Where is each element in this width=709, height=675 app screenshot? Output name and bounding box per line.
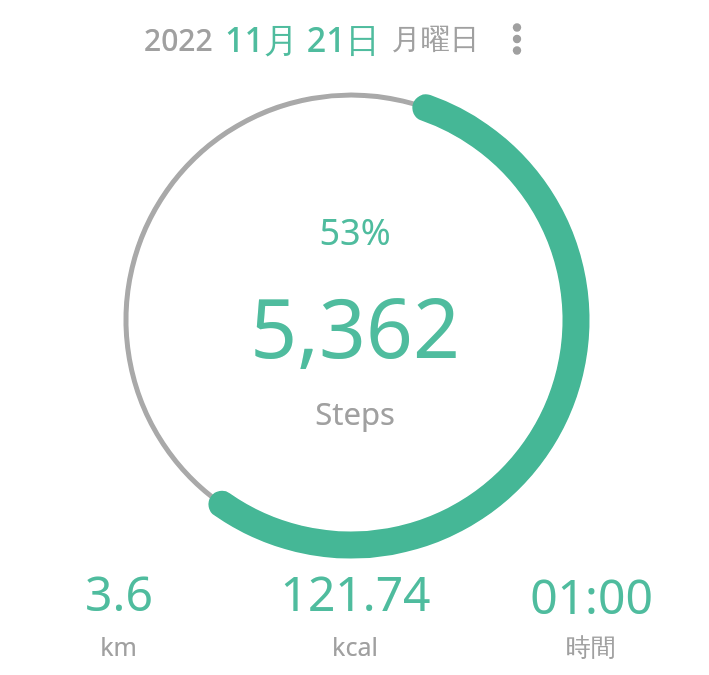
staticText: 5,362 <box>250 270 460 382</box>
staticText: 3.6 <box>85 560 153 625</box>
staticText: 121.74 <box>280 560 431 625</box>
button[interactable]: More options <box>493 15 541 63</box>
staticText: Steps <box>315 392 395 434</box>
button[interactable]: 2022 <box>144 16 479 62</box>
button[interactable]: 01:00 <box>473 563 709 663</box>
staticText: 11月 21日 <box>225 16 380 62</box>
staticText: kcal <box>332 629 378 663</box>
staticText: 月曜日 <box>392 21 479 58</box>
staticText: 53% <box>319 207 391 256</box>
staticText: 2022 <box>144 19 213 60</box>
button[interactable]: 3.6 <box>0 560 237 663</box>
staticText: 01:00 <box>530 563 653 628</box>
staticText: 時間 <box>566 632 616 663</box>
button[interactable]: 121.74 <box>237 560 473 663</box>
staticText: km <box>100 629 137 663</box>
